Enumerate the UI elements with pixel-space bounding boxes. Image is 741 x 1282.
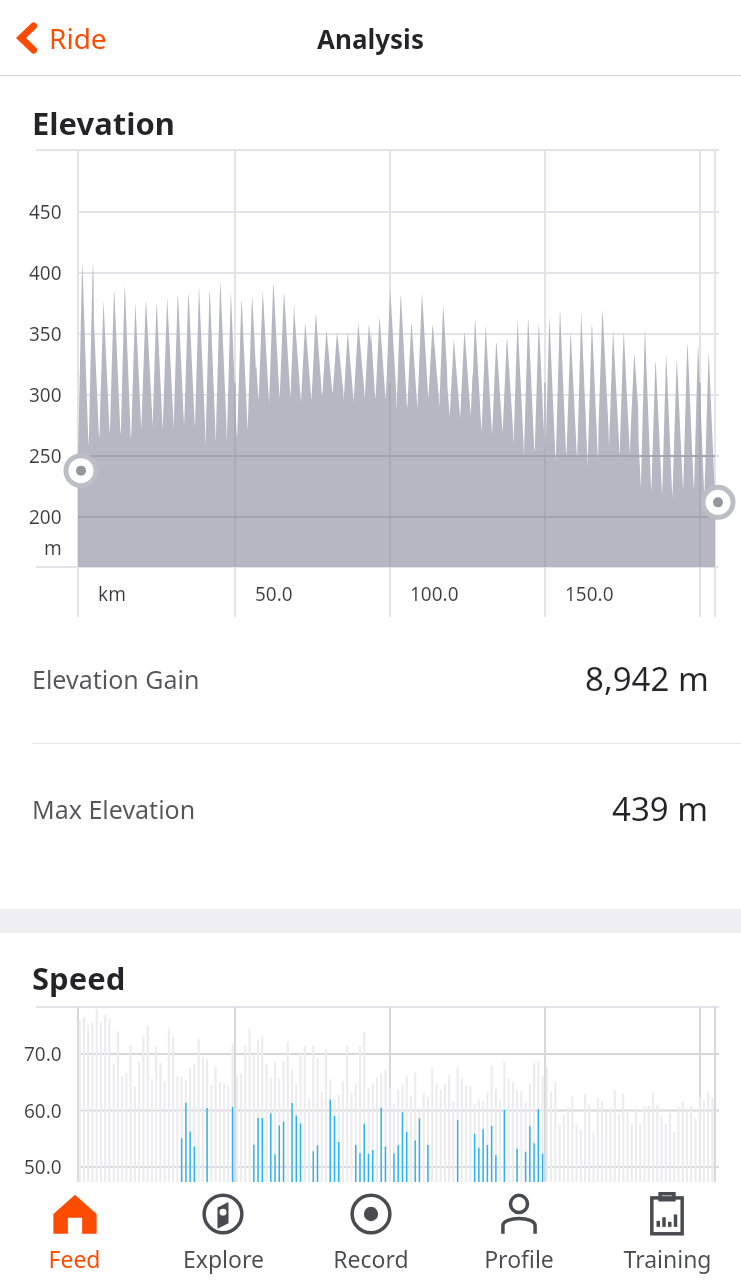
button[interactable]: Training: [593, 1182, 741, 1282]
staticText: 8,942 m: [585, 656, 709, 701]
staticText: Feed: [48, 1243, 101, 1274]
staticText: Explore: [183, 1243, 264, 1274]
button[interactable]: Feed: [0, 1182, 149, 1282]
staticText: Profile: [484, 1243, 554, 1274]
staticText: Record: [333, 1243, 409, 1274]
button[interactable]: Max Elevation: [0, 744, 741, 873]
button[interactable]: Profile: [445, 1182, 593, 1282]
staticText: Elevation: [32, 102, 176, 144]
button[interactable]: Record: [297, 1182, 445, 1282]
button[interactable]: Ride: [10, 11, 115, 65]
staticText: Analysis: [317, 21, 424, 56]
staticText: Training: [623, 1243, 712, 1274]
staticText: Ride: [49, 19, 107, 57]
staticText: 439 m: [612, 786, 709, 831]
button[interactable]: Explore: [149, 1182, 297, 1282]
staticText: Speed: [32, 957, 126, 999]
staticText: Max Elevation: [32, 792, 196, 826]
button[interactable]: Elevation Gain: [0, 614, 741, 743]
staticText: Elevation Gain: [32, 662, 200, 696]
